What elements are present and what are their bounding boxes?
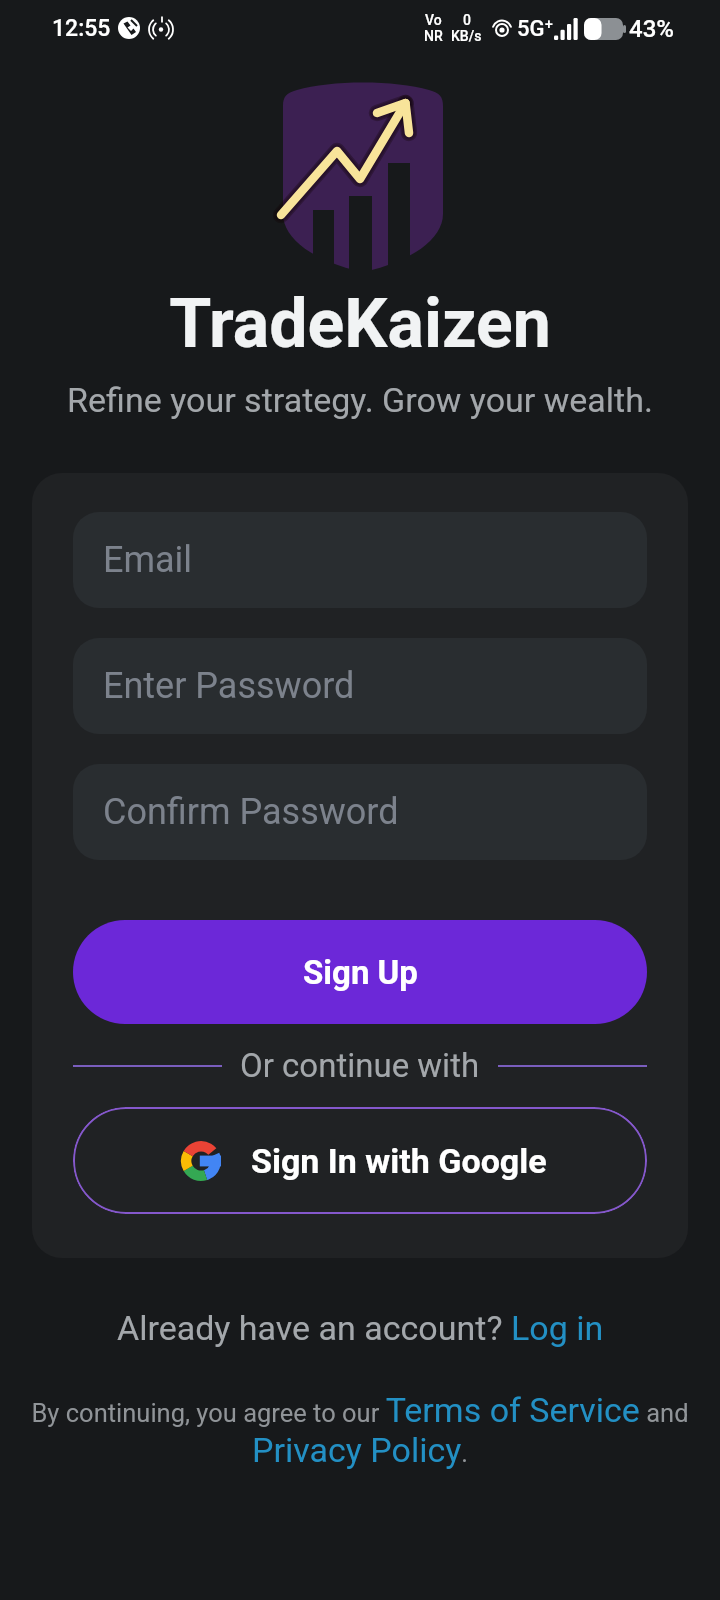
staticText: NR — [424, 28, 443, 44]
staticText: 5G — [517, 16, 545, 42]
staticText: + — [545, 16, 553, 32]
other: Google — [181, 1141, 221, 1181]
button[interactable]: Google — [73, 1107, 647, 1214]
staticText: Refine your strategy. Grow your wealth. — [0, 380, 720, 420]
staticText: 43% — [629, 15, 674, 43]
button[interactable]: Enter Password — [73, 638, 647, 734]
staticText: Sign In with Google — [251, 1141, 547, 1181]
staticText: Enter Password — [103, 665, 355, 707]
staticText: Log in — [511, 1308, 604, 1348]
other: TradeKaizen logo — [283, 84, 443, 274]
staticText: By continuing, you agree to our Terms of… — [26, 1390, 694, 1471]
button[interactable]: Log in — [511, 1308, 604, 1348]
staticText: Or continue with — [240, 1046, 480, 1085]
staticText: Vo — [425, 12, 442, 28]
staticText: 0 — [463, 12, 471, 28]
staticText: KB/s — [451, 28, 482, 44]
staticText: Email — [103, 539, 193, 581]
staticText: Sign Up — [303, 953, 418, 992]
button[interactable]: Confirm Password — [73, 764, 647, 860]
button[interactable]: Sign Up — [73, 920, 647, 1024]
button[interactable]: By continuing, you agree to our Terms of… — [0, 1390, 720, 1471]
staticText: TradeKaizen — [0, 284, 720, 364]
staticText: Confirm Password — [103, 791, 399, 833]
button[interactable]: Email — [73, 512, 647, 608]
staticText: Already have an account? — [117, 1308, 511, 1348]
staticText: 12:55 — [52, 15, 111, 42]
